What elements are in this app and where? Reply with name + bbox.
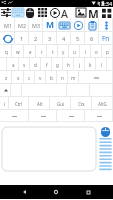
button[interactable]: Image xyxy=(74,7,87,18)
button[interactable]: Media xyxy=(48,7,61,18)
button[interactable] xyxy=(90,84,113,97)
button[interactable]: Back xyxy=(16,185,32,199)
button[interactable]: M3 xyxy=(29,18,43,32)
staticText: M xyxy=(46,19,55,31)
staticText: Ab xyxy=(61,7,74,18)
staticText: a xyxy=(12,62,15,68)
staticText: f xyxy=(46,62,48,68)
staticText: d xyxy=(34,62,37,68)
button[interactable]: 3 xyxy=(43,32,57,45)
button[interactable]: 4 xyxy=(57,32,71,45)
staticText: 5 xyxy=(76,35,80,43)
button[interactable]: i xyxy=(0,97,9,110)
button[interactable]: Mouse xyxy=(24,7,36,18)
button[interactable]: z xyxy=(0,71,12,84)
button[interactable]: Fn xyxy=(99,32,113,45)
button[interactable]: t xyxy=(47,45,58,58)
button[interactable]: Play xyxy=(71,18,85,32)
button[interactable]: q xyxy=(0,45,12,58)
staticText: v xyxy=(39,75,42,81)
button[interactable] xyxy=(67,84,90,97)
button[interactable]: M2 xyxy=(15,18,29,32)
button[interactable]: Up xyxy=(57,110,85,122)
button[interactable]: Down xyxy=(29,110,57,122)
button[interactable]: Backspace xyxy=(79,71,113,84)
button[interactable]: y xyxy=(58,45,69,58)
button[interactable]: k xyxy=(85,58,96,71)
button[interactable]: v xyxy=(35,71,46,84)
button[interactable]: Numpad xyxy=(36,7,48,18)
button[interactable]: s xyxy=(19,58,30,71)
button[interactable]: Ctx xyxy=(71,97,92,110)
staticText: m xyxy=(71,75,76,81)
staticText: q xyxy=(5,49,8,55)
button[interactable]: x xyxy=(12,71,24,84)
button[interactable]: Scroll xyxy=(99,138,112,172)
button[interactable]: p xyxy=(102,45,113,58)
button[interactable]: Settings xyxy=(0,7,12,18)
button[interactable] xyxy=(107,58,113,71)
button[interactable]: e xyxy=(24,45,36,58)
button[interactable]: AltG xyxy=(92,97,113,110)
button[interactable]: i xyxy=(80,45,91,58)
button[interactable]: c xyxy=(24,71,35,84)
staticText: Ctrl xyxy=(15,101,23,107)
button[interactable]: Touchpad xyxy=(2,127,96,171)
staticText: p xyxy=(106,49,109,55)
button[interactable]: u xyxy=(69,45,80,58)
button[interactable]: M1 xyxy=(0,18,15,32)
button[interactable]: Text xyxy=(61,7,74,18)
button[interactable]: Right xyxy=(85,110,113,122)
button[interactable]: Keyboard layout xyxy=(57,18,71,32)
button[interactable] xyxy=(0,58,7,71)
button[interactable]: 6 xyxy=(85,32,99,45)
staticText: i xyxy=(4,101,6,107)
button[interactable]: o xyxy=(91,45,102,58)
button[interactable]: Ctrl xyxy=(9,97,29,110)
button[interactable]: Alt xyxy=(29,97,50,110)
button[interactable]: h xyxy=(63,58,74,71)
staticText: h xyxy=(67,62,70,68)
button[interactable]: Apps xyxy=(100,7,113,18)
staticText: 4 xyxy=(62,35,66,43)
button[interactable]: a xyxy=(7,58,19,71)
button[interactable]: w xyxy=(12,45,24,58)
button[interactable]: Recents xyxy=(80,185,96,199)
button[interactable]: r xyxy=(36,45,47,58)
staticText: Alt xyxy=(37,101,43,107)
staticText: y xyxy=(62,49,65,55)
button[interactable]: Clipboard xyxy=(85,18,99,32)
button[interactable]: j xyxy=(74,58,85,71)
button[interactable]: More options xyxy=(99,18,113,32)
button[interactable]: l xyxy=(96,58,107,71)
button[interactable]: Shift xyxy=(0,84,11,97)
button[interactable]: Macro xyxy=(87,7,100,18)
staticText: M3 xyxy=(32,22,40,29)
button[interactable]: 1 xyxy=(15,32,29,45)
staticText: s xyxy=(23,62,26,68)
staticText: Fn xyxy=(102,34,110,43)
button[interactable]: Mouse buttons xyxy=(101,127,110,137)
button[interactable] xyxy=(22,84,67,97)
button[interactable]: Keyboard xyxy=(12,7,24,18)
button[interactable]: M xyxy=(43,18,57,32)
button[interactable]: g xyxy=(52,58,63,71)
button[interactable]: 2 xyxy=(29,32,43,45)
staticText: o xyxy=(95,49,98,55)
button[interactable]: Refresh xyxy=(0,32,15,45)
button[interactable]: Gui xyxy=(50,97,71,110)
staticText: i xyxy=(85,49,87,55)
button[interactable]: 5 xyxy=(71,32,85,45)
button[interactable]: n xyxy=(57,71,68,84)
staticText: M1 xyxy=(4,22,12,29)
button[interactable]: f xyxy=(41,58,52,71)
staticText: Ctx xyxy=(78,101,85,107)
staticText: 1 xyxy=(20,35,24,43)
button[interactable] xyxy=(11,84,22,97)
button[interactable]: Left xyxy=(0,110,29,122)
button[interactable]: d xyxy=(30,58,41,71)
button[interactable]: b xyxy=(46,71,57,84)
staticText: M2 xyxy=(18,22,26,29)
button[interactable]: Home xyxy=(48,185,64,199)
button[interactable]: m xyxy=(68,71,79,84)
